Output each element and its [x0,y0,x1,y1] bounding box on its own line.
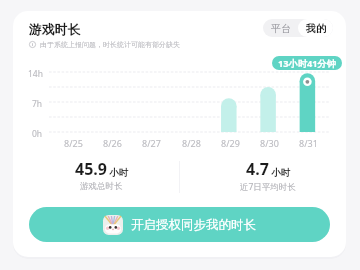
staticText: 7h [32,98,43,110]
staticText: 8/30 [260,137,279,149]
staticText: 开启授权同步我的时长 [131,217,256,233]
staticText: 8/25 [64,137,83,149]
staticText: 小时 [109,167,128,179]
staticText: 8/31 [299,137,318,149]
staticText: 4.7 [246,158,269,180]
button[interactable]: Avatar [29,207,330,242]
staticText: 近7日平均时长 [240,181,296,193]
staticText: 游戏时长 [29,22,81,38]
staticText: 8/26 [103,137,122,149]
staticText: 45.9 [75,158,107,180]
staticText: 14h [28,68,43,80]
button[interactable]: 我的 [298,19,333,37]
staticText: 我的 [306,22,326,35]
staticText: 游戏总时长 [80,181,123,192]
staticText: 13小时41分钟 [278,57,336,70]
staticText: 8/29 [221,137,240,149]
button[interactable]: 由于系统上报问题，时长统计可能有部分缺失 [29,40,180,49]
staticText: 小时 [271,167,290,179]
other: Avatar [103,215,123,235]
staticText: 8/28 [182,137,201,149]
staticText: 平台 [271,22,291,35]
button[interactable]: 平台 [263,19,298,37]
staticText: 由于系统上报问题，时长统计可能有部分缺失 [40,40,180,49]
staticText: 0h [32,128,43,140]
staticText: 8/27 [142,137,161,149]
